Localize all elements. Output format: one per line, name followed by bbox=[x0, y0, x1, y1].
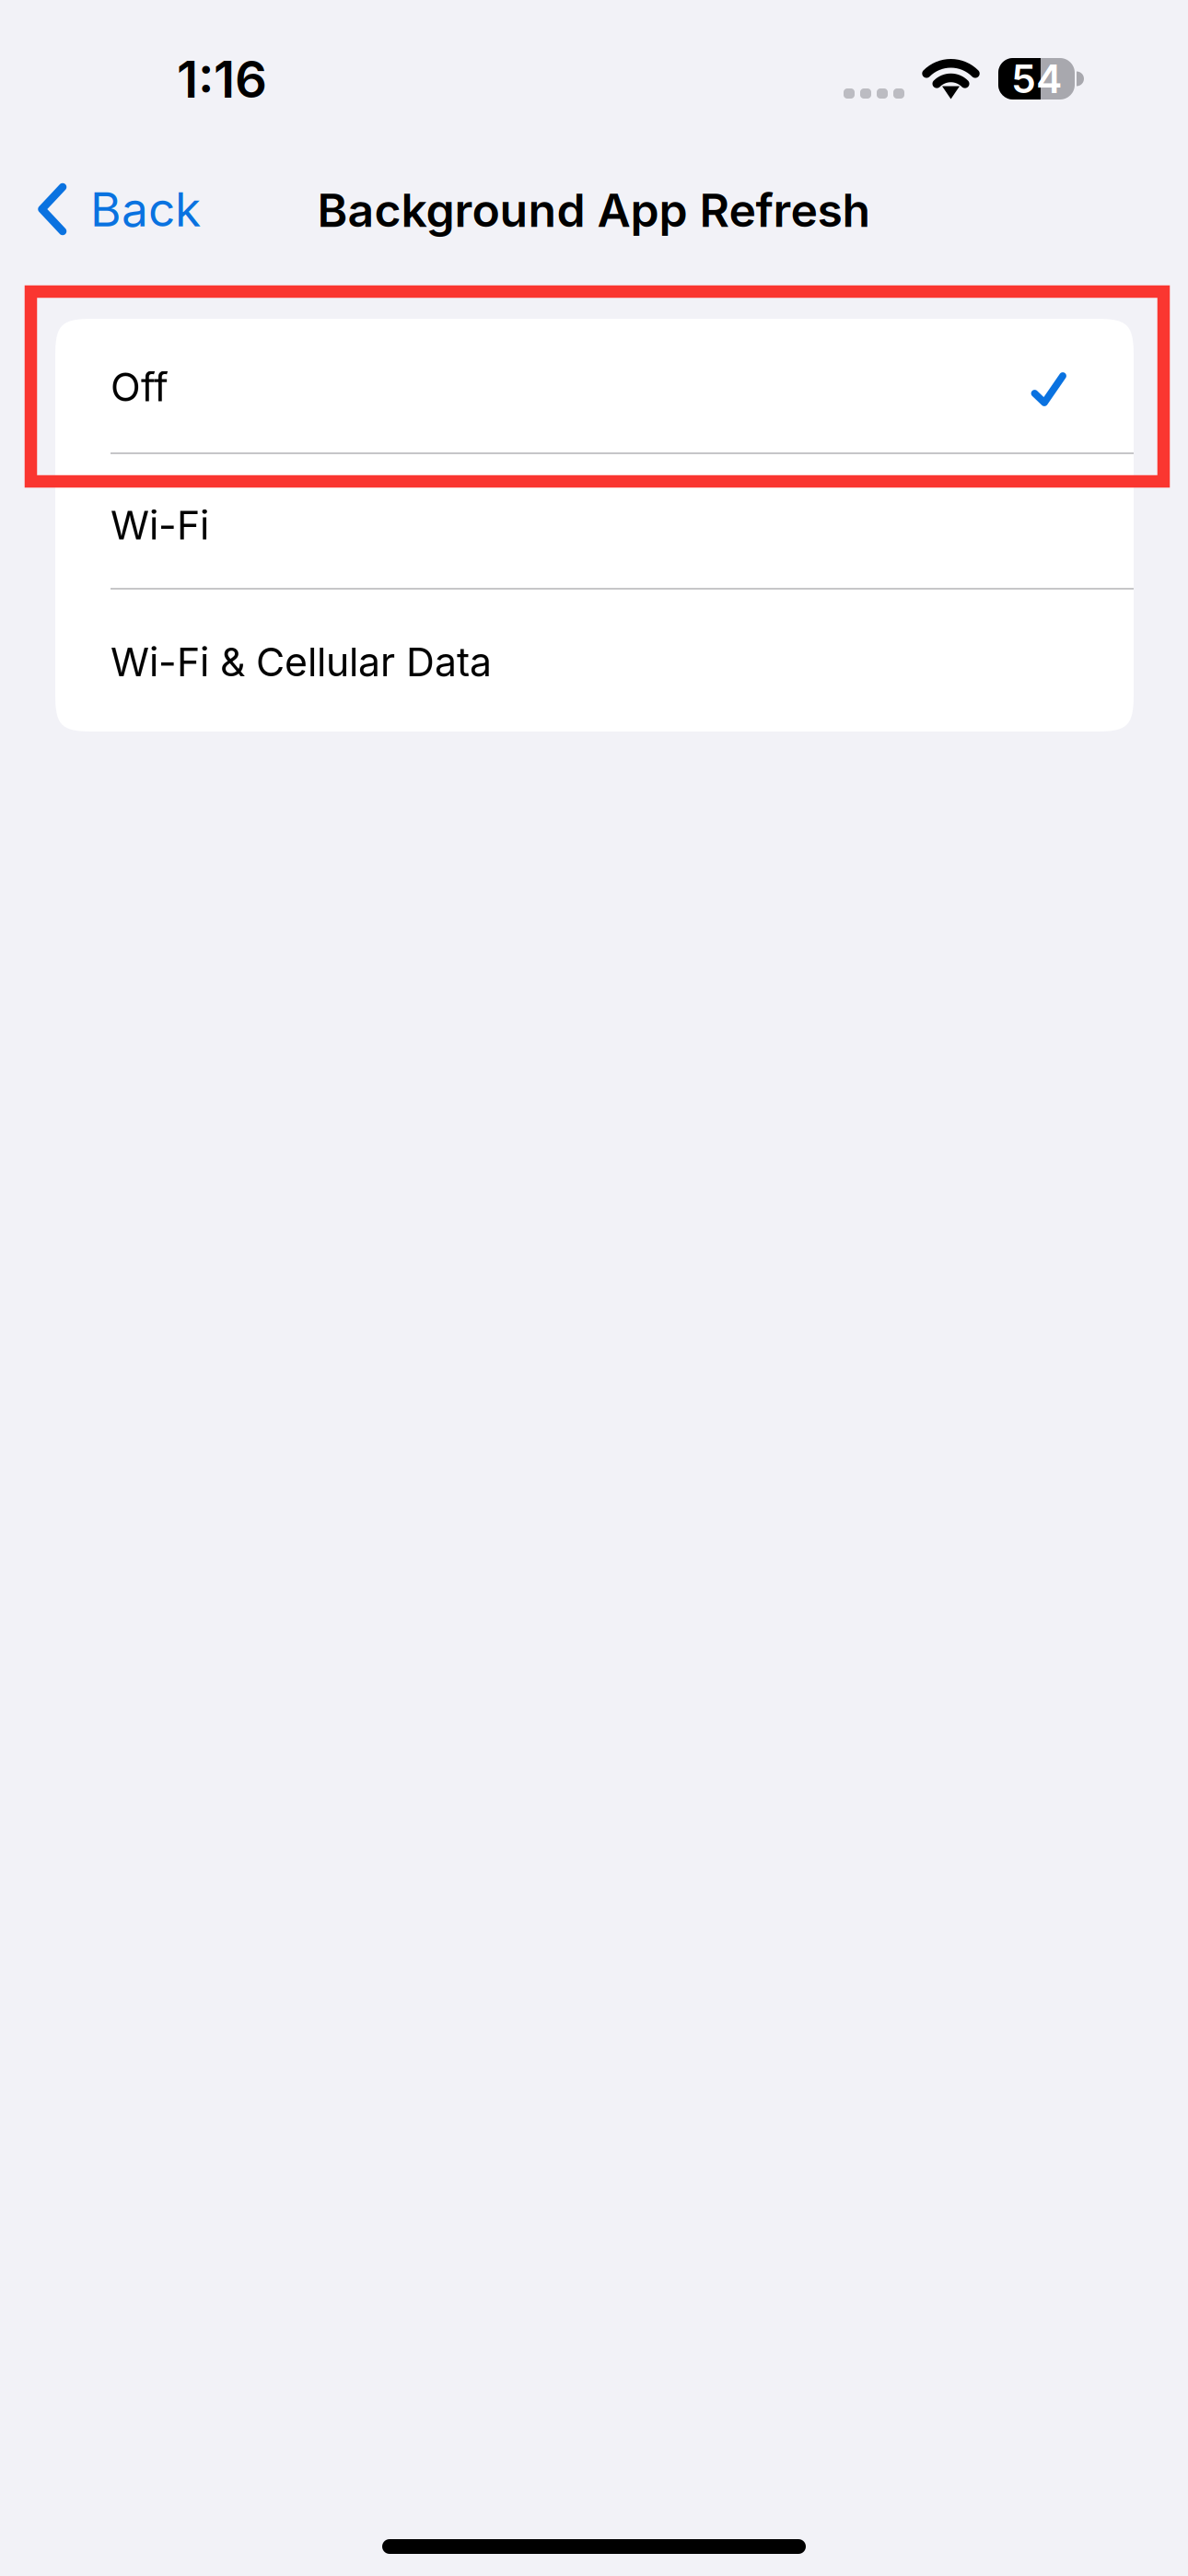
staticText: Background App Refresh bbox=[317, 182, 871, 238]
staticText: 54 bbox=[1011, 55, 1062, 103]
button[interactable]: Off bbox=[55, 319, 1134, 454]
button[interactable]: Back bbox=[0, 158, 223, 260]
button[interactable]: Wi-Fi & Cellular Data bbox=[55, 590, 1134, 732]
staticText: Back bbox=[90, 180, 201, 238]
button[interactable]: Wi-Fi bbox=[55, 454, 1134, 590]
staticText: Wi-Fi bbox=[111, 501, 209, 549]
staticText: Wi-Fi & Cellular Data bbox=[111, 638, 492, 686]
staticText: 1:16 bbox=[177, 49, 267, 110]
staticText: Off bbox=[111, 363, 169, 411]
